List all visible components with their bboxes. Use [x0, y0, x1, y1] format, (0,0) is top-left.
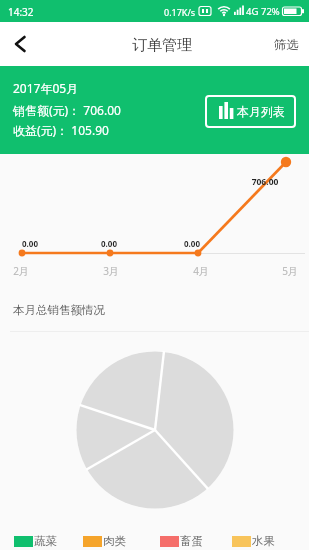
staticText: 0.00: [95, 238, 123, 249]
button[interactable]: 本月列表: [205, 95, 296, 128]
staticText: 2月: [9, 264, 33, 278]
staticText: 72%: [261, 5, 280, 18]
staticText: 畜蛋: [180, 534, 203, 547]
staticText: 14:32: [8, 5, 34, 19]
button[interactable]: [4, 22, 44, 66]
staticText: 蔬菜: [34, 534, 57, 547]
staticText: 本月总销售额情况: [13, 303, 105, 317]
staticText: 订单管理: [132, 36, 192, 55]
staticText: 水果: [252, 534, 275, 547]
staticText: 0.00: [178, 238, 206, 249]
staticText: 4月: [189, 264, 213, 278]
staticText: 2017年05月: [13, 80, 79, 96]
staticText: 706.00: [245, 176, 285, 188]
staticText: 5月: [278, 264, 302, 278]
staticText: 收益(元)： 105.90: [13, 122, 109, 138]
staticText: 销售额(元)： 706.00: [13, 102, 121, 118]
button[interactable]: 筛选: [266, 22, 309, 66]
staticText: 筛选: [274, 37, 299, 53]
staticText: 3月: [99, 264, 123, 278]
staticText: 0.17K/s: [164, 6, 196, 18]
staticText: 肉类: [103, 534, 126, 547]
staticText: 0.00: [16, 238, 44, 249]
staticText: 4G: [246, 5, 259, 18]
staticText: 本月列表: [237, 104, 285, 119]
